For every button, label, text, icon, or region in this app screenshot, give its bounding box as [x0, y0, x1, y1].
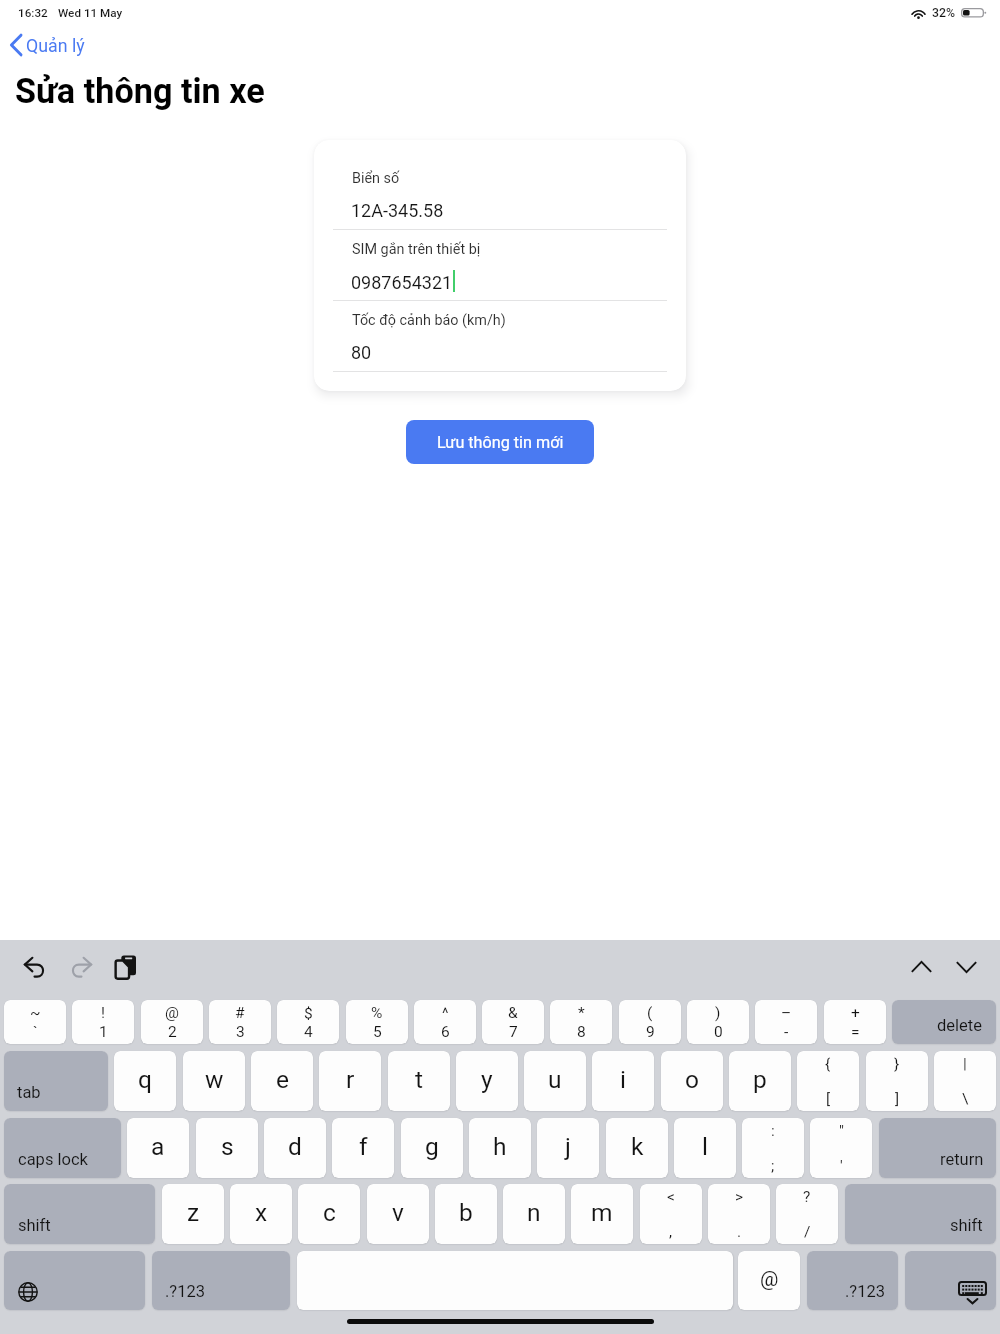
button[interactable]: z — [162, 1184, 224, 1244]
button[interactable]: Next field — [956, 956, 977, 978]
button[interactable]: Undo — [24, 957, 45, 977]
button[interactable]: ! — [72, 1000, 134, 1044]
button[interactable]: k — [606, 1118, 668, 1178]
staticText: j — [565, 1132, 571, 1161]
staticText: 3 — [236, 1023, 245, 1041]
button[interactable]: – — [755, 1000, 817, 1044]
button[interactable]: i — [592, 1051, 654, 1111]
staticText: / — [804, 1223, 811, 1241]
button[interactable]: h — [469, 1118, 531, 1178]
button[interactable]: : — [742, 1118, 804, 1178]
staticText: d — [288, 1132, 302, 1161]
button[interactable]: .?123 — [807, 1251, 898, 1310]
button[interactable]: Hide keyboard — [905, 1251, 996, 1310]
button[interactable]: f — [332, 1118, 394, 1178]
button[interactable]: shift — [4, 1184, 155, 1244]
button[interactable]: y — [456, 1051, 518, 1111]
button[interactable]: @ — [141, 1000, 203, 1044]
staticText: t — [415, 1065, 424, 1094]
staticText: $ — [304, 1004, 313, 1022]
other: Change keyboard — [18, 1282, 38, 1302]
button[interactable]: Lưu thông tin mới — [406, 420, 594, 464]
button[interactable]: return — [879, 1118, 996, 1178]
button[interactable]: delete — [892, 1000, 996, 1044]
button[interactable]: caps lock — [4, 1118, 121, 1178]
button[interactable]: w — [183, 1051, 245, 1111]
staticText: caps lock — [18, 1150, 88, 1169]
button[interactable]: Redo — [71, 957, 92, 977]
button[interactable]: ? — [776, 1184, 838, 1244]
staticText: SIM gắn trên thiết bị — [352, 241, 481, 258]
button[interactable]: Quản lý — [6, 31, 91, 59]
staticText: | — [963, 1055, 967, 1073]
staticText: 16:32 — [18, 6, 48, 20]
button[interactable]: ~ — [4, 1000, 66, 1044]
button[interactable]: @ — [738, 1251, 800, 1310]
staticText: ^ — [442, 1004, 449, 1022]
staticText: – — [781, 1004, 792, 1022]
button[interactable]: < — [640, 1184, 702, 1244]
staticText: ~ — [30, 1004, 41, 1022]
button[interactable]: j — [537, 1118, 599, 1178]
button[interactable]: r — [319, 1051, 381, 1111]
button[interactable]: ) — [687, 1000, 749, 1044]
button[interactable]: " — [810, 1118, 872, 1178]
button[interactable]: > — [708, 1184, 770, 1244]
button[interactable]: ( — [619, 1000, 681, 1044]
button[interactable]: x — [230, 1184, 292, 1244]
button[interactable]: d — [264, 1118, 326, 1178]
button[interactable]: b — [435, 1184, 497, 1244]
staticText: 9 — [646, 1023, 655, 1041]
staticText: .?123 — [845, 1282, 885, 1301]
button[interactable]: tab — [4, 1051, 108, 1111]
button[interactable]: * — [550, 1000, 612, 1044]
button[interactable]: $ — [277, 1000, 339, 1044]
button[interactable]: & — [482, 1000, 544, 1044]
button[interactable]: + — [824, 1000, 886, 1044]
button[interactable]: g — [401, 1118, 463, 1178]
button[interactable]: Previous field — [911, 956, 932, 978]
button[interactable]: # — [209, 1000, 271, 1044]
button[interactable]: ^ — [414, 1000, 476, 1044]
button[interactable]: t — [388, 1051, 450, 1111]
button[interactable]: n — [503, 1184, 565, 1244]
staticText: = — [851, 1023, 860, 1041]
staticText: [ — [826, 1090, 831, 1108]
button[interactable]: } — [866, 1051, 928, 1111]
button[interactable]: shift — [845, 1184, 996, 1244]
staticText: ` — [33, 1023, 38, 1041]
button[interactable]: Change keyboard — [4, 1251, 145, 1310]
button[interactable]: | — [934, 1051, 996, 1111]
staticText: shift — [950, 1216, 983, 1235]
staticText: # — [235, 1004, 245, 1022]
button[interactable]: v — [367, 1184, 429, 1244]
button[interactable]: Paste — [115, 954, 136, 980]
button[interactable]: m — [571, 1184, 633, 1244]
staticText: 80 — [351, 342, 372, 363]
button[interactable]: % — [346, 1000, 408, 1044]
staticText: v — [392, 1198, 404, 1227]
staticText: Quản lý — [26, 35, 85, 56]
button[interactable]: s — [196, 1118, 258, 1178]
button[interactable]: l — [674, 1118, 736, 1178]
staticText: ' — [840, 1157, 843, 1175]
button[interactable]: { — [797, 1051, 859, 1111]
button[interactable]: c — [298, 1184, 360, 1244]
button[interactable]: o — [661, 1051, 723, 1111]
staticText: 1 — [99, 1023, 108, 1041]
button[interactable]: e — [251, 1051, 313, 1111]
button[interactable]: u — [524, 1051, 586, 1111]
staticText: 32% — [932, 6, 956, 20]
staticText: 7 — [509, 1023, 518, 1041]
staticText: .?123 — [165, 1282, 205, 1301]
staticText: c — [323, 1198, 336, 1227]
button[interactable]: p — [729, 1051, 791, 1111]
button[interactable]: .?123 — [152, 1251, 290, 1310]
staticText: k — [631, 1132, 644, 1161]
staticText: @ — [760, 1267, 779, 1291]
staticText: p — [753, 1065, 767, 1094]
staticText: % — [371, 1004, 383, 1022]
button[interactable]: q — [114, 1051, 176, 1111]
button[interactable]: a — [127, 1118, 189, 1178]
